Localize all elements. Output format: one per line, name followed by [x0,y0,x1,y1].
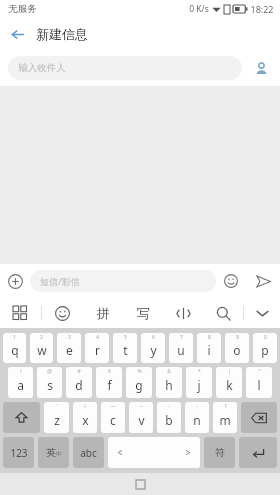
button[interactable]: 6 [141,333,165,363]
staticText: § [108,368,111,375]
button[interactable]: 8 [197,333,221,363]
staticText: q [11,342,19,358]
button[interactable]: 9 [225,333,249,363]
button[interactable]: smile [42,298,83,328]
button[interactable]: Back [0,18,34,50]
button[interactable]: del [241,402,277,433]
button[interactable]: Add contact [242,50,280,86]
button[interactable]: % [126,367,152,398]
staticText: s [47,377,53,393]
button[interactable]: 短信/彩信 [30,270,216,292]
staticText: # [77,368,81,375]
staticText: u [177,342,185,358]
staticText: 4 [96,334,99,341]
staticText: g [135,377,143,393]
staticText: a [17,377,24,393]
staticText: 9 [236,334,239,341]
staticText: / [84,403,86,410]
button[interactable]: text:写 [123,298,163,328]
staticText: n [193,412,201,428]
staticText: 中 [56,450,62,458]
button[interactable]: 4 [85,333,109,363]
staticText: 输入收件人 [18,62,66,74]
staticText: 英 [46,446,56,459]
button[interactable]: 3 [57,333,81,363]
staticText: 写 [137,305,150,321]
button[interactable]: 输入收件人 [8,56,242,80]
staticText: t [123,342,128,358]
button[interactable]: Recents [129,473,151,495]
button[interactable]: § [96,367,122,398]
button[interactable]: text:拼 [83,298,123,328]
staticText: 短信/彩信 [40,275,80,287]
button[interactable]: 123 [3,437,34,468]
button[interactable]: @ [37,367,62,398]
button[interactable]: 7 [169,333,193,363]
staticText: : [168,403,170,410]
button[interactable]: chevron [244,298,280,328]
staticText: i [207,342,211,358]
staticText: 123 [10,446,28,460]
button[interactable]: / [73,402,97,433]
button[interactable]: ! [8,367,33,398]
button[interactable]: 英 [38,437,69,468]
button[interactable]: shift [3,402,40,433]
button[interactable]: — [101,402,125,433]
staticText: 18:22 [250,3,274,15]
button[interactable]: Emoji [216,266,246,296]
staticText: — [110,403,116,410]
staticText: r [95,342,100,358]
button[interactable]: 0 [253,333,277,363]
button[interactable]: ～ [129,402,153,433]
staticText: z [54,412,60,428]
button[interactable]: " [246,367,272,398]
staticText: ? [224,403,227,410]
staticText: 1 [13,334,16,341]
button[interactable]: Send [246,264,280,298]
staticText: l [257,377,261,393]
staticText: 6 [152,334,155,341]
staticText: y [150,342,157,358]
staticText: ; [196,403,198,410]
staticText: 无服务 [8,3,37,15]
staticText: 符 [215,446,225,459]
staticText: v [138,412,145,428]
button[interactable]: ; [185,402,209,433]
button[interactable]: enter [239,437,277,468]
staticText: ! [20,368,22,375]
staticText: e [66,342,73,358]
staticText: 8 [208,334,211,341]
staticText: 2 [40,334,43,341]
staticText: d [75,377,83,393]
staticText: & [167,368,171,375]
button[interactable]: # [66,367,92,398]
button[interactable]: | [216,367,242,398]
button[interactable]: grid [0,298,41,328]
button[interactable]: : [157,402,181,433]
button[interactable]: 5 [113,333,137,363]
staticText: b [165,412,173,428]
staticText: h [165,377,173,393]
staticText: 0 [264,334,267,341]
button[interactable]: * [186,367,212,398]
button[interactable]: 2 [30,333,53,363]
staticText: x [82,412,89,428]
staticText: ' [56,403,58,410]
button[interactable]: & [156,367,182,398]
staticText: w [37,342,47,358]
button[interactable]: Attach [0,266,30,296]
button[interactable]: abc [73,437,104,468]
staticText: 7 [180,334,183,341]
staticText: m [219,412,231,428]
staticText: 3 [68,334,71,341]
button[interactable]: ' [44,402,69,433]
button[interactable]: ? [213,402,237,433]
staticText: ～ [139,403,144,409]
staticText: p [261,342,269,358]
staticText: 新建信息 [36,26,88,42]
button[interactable]: cursor [163,298,203,328]
button[interactable]: Space [108,437,200,468]
button[interactable]: 1 [3,333,26,363]
button[interactable]: search [203,298,243,328]
button[interactable]: 符 [204,437,235,468]
